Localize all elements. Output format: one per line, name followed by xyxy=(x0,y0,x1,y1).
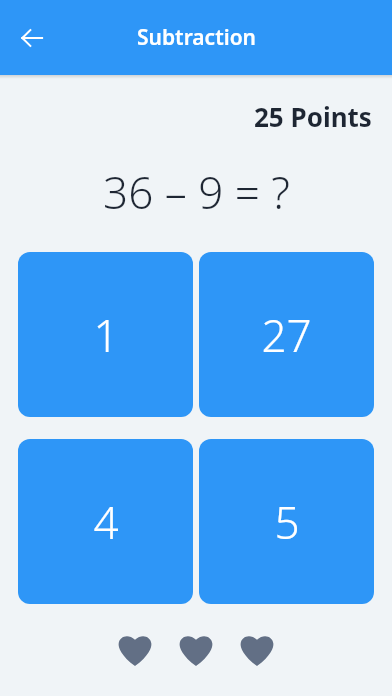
staticText: 5 xyxy=(274,492,300,552)
staticText: 36 – 9 = ? xyxy=(103,162,290,222)
staticText: 25 Points xyxy=(254,99,372,134)
button[interactable]: 5 xyxy=(199,439,374,604)
button[interactable]: Life remaining xyxy=(239,632,275,668)
button[interactable]: 27 xyxy=(199,252,374,417)
staticText: 1 xyxy=(93,305,119,365)
button[interactable]: Life remaining xyxy=(178,632,214,668)
button[interactable]: 1 xyxy=(18,252,193,417)
staticText: 4 xyxy=(93,492,119,552)
staticText: 27 xyxy=(261,305,312,365)
button[interactable]: 4 xyxy=(18,439,193,604)
button[interactable]: Life remaining xyxy=(117,632,153,668)
button[interactable]: Back xyxy=(8,14,56,62)
staticText: Subtraction xyxy=(137,23,256,52)
